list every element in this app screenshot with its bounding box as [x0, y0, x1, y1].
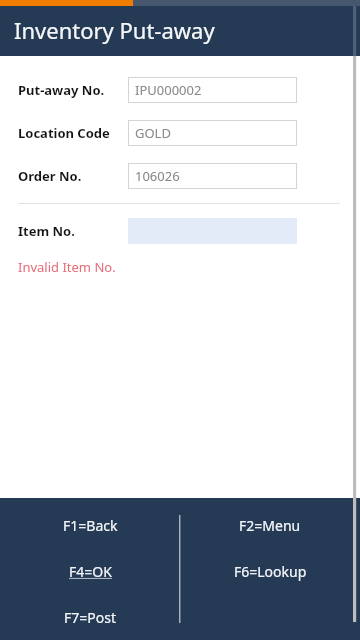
button[interactable]: F1=Back	[0, 502, 180, 548]
button[interactable]: F4=OK	[0, 548, 180, 594]
button[interactable]: F7=Post	[0, 594, 180, 640]
staticText: F6=Lookup	[234, 562, 307, 581]
staticText: Location Code	[18, 124, 110, 142]
button[interactable]: Location Code	[0, 111, 360, 154]
staticText: F2=Menu	[239, 516, 301, 535]
staticText: GOLD	[135, 124, 171, 142]
button[interactable]: Order No.	[0, 154, 360, 197]
staticText: Inventory Put-away	[14, 15, 215, 45]
staticText: 106026	[135, 167, 180, 185]
button[interactable]: Put-away No.	[0, 68, 360, 111]
staticText: F1=Back	[63, 516, 118, 535]
staticText: Put-away No.	[18, 81, 105, 99]
staticText: IPU000002	[135, 81, 202, 99]
button[interactable]: F6=Lookup	[180, 548, 360, 594]
staticText: Order No.	[18, 167, 82, 185]
button[interactable]: F2=Menu	[180, 502, 360, 548]
staticText: Invalid Item No.	[18, 258, 116, 276]
staticText: F4=OK	[69, 562, 112, 581]
staticText: Item No.	[18, 222, 75, 240]
staticText: F7=Post	[64, 608, 116, 627]
button[interactable]: Item No.	[0, 209, 360, 252]
